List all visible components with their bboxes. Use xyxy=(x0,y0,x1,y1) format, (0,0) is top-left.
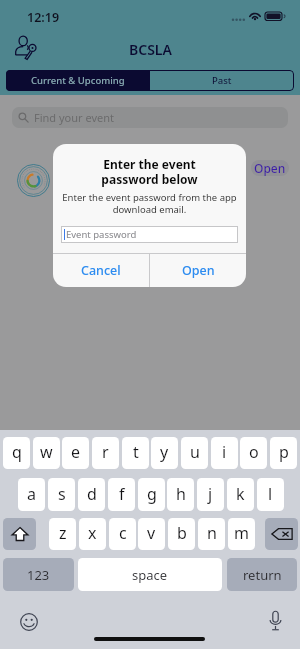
staticText: m xyxy=(234,522,249,544)
button[interactable]: w xyxy=(33,437,60,469)
staticText: u xyxy=(190,441,200,463)
button[interactable]: Open xyxy=(150,253,246,287)
button[interactable]: Account and password xyxy=(12,33,40,61)
staticText: 123 xyxy=(27,566,50,584)
staticText: v xyxy=(147,522,156,544)
staticText: n xyxy=(207,522,217,544)
button[interactable]: q xyxy=(3,437,30,469)
button[interactable]: c xyxy=(109,518,136,550)
button[interactable]: g xyxy=(138,478,165,511)
staticText: Enter the event password below xyxy=(53,156,246,187)
button[interactable]: v xyxy=(138,518,165,550)
staticText: t xyxy=(133,441,139,463)
button[interactable]: j xyxy=(197,478,224,511)
staticText: b xyxy=(177,522,187,544)
staticText: return xyxy=(243,566,282,584)
staticText: p xyxy=(279,441,289,463)
staticText: Event password xyxy=(66,228,137,241)
staticText: d xyxy=(87,483,97,505)
button[interactable]: a xyxy=(18,478,45,511)
button[interactable]: z xyxy=(49,518,76,550)
button[interactable]: t xyxy=(122,437,149,469)
button[interactable]: Shift xyxy=(3,518,36,550)
button[interactable]: return xyxy=(227,558,297,591)
staticText: Enter the event password from the app do… xyxy=(59,191,240,215)
button[interactable]: s xyxy=(48,478,75,511)
staticText: j xyxy=(208,483,213,505)
staticText: Open xyxy=(182,262,215,279)
button[interactable]: Dictation xyxy=(268,610,283,631)
staticText: y xyxy=(160,441,169,463)
button[interactable]: y xyxy=(151,437,178,469)
staticText: Cancel xyxy=(81,262,121,279)
staticText: i xyxy=(222,441,227,463)
staticText: f xyxy=(119,483,125,505)
staticText: c xyxy=(119,522,127,544)
staticText: Past xyxy=(212,74,232,87)
button[interactable]: i xyxy=(211,437,238,469)
button[interactable]: x xyxy=(79,518,106,550)
button[interactable]: r xyxy=(92,437,119,469)
staticText: z xyxy=(59,522,67,544)
staticText: space xyxy=(132,566,168,584)
staticText: k xyxy=(236,483,245,505)
button[interactable]: 123 xyxy=(3,558,74,591)
staticText: BCSLA xyxy=(129,40,172,59)
button[interactable]: d xyxy=(78,478,105,511)
button[interactable]: Past xyxy=(150,70,294,91)
staticText: q xyxy=(12,441,22,463)
button[interactable]: Cancel xyxy=(53,253,149,287)
button[interactable]: h xyxy=(167,478,194,511)
staticText: s xyxy=(58,483,66,505)
button[interactable]: Find your event xyxy=(12,107,288,128)
staticText: 12:19 xyxy=(27,9,60,26)
staticText: x xyxy=(88,522,97,544)
staticText: g xyxy=(147,483,157,505)
button[interactable]: f xyxy=(108,478,135,511)
button[interactable]: Open xyxy=(251,160,289,176)
button[interactable]: space xyxy=(78,558,222,591)
staticText: h xyxy=(176,483,186,505)
button[interactable]: e xyxy=(62,437,89,469)
staticText: Open xyxy=(254,160,286,176)
staticText: e xyxy=(71,441,81,463)
button[interactable]: u xyxy=(181,437,208,469)
staticText: w xyxy=(40,441,53,463)
button[interactable]: k xyxy=(227,478,254,511)
button[interactable]: m xyxy=(228,518,255,550)
staticText: l xyxy=(268,483,273,505)
staticText: o xyxy=(249,441,259,463)
button[interactable]: p xyxy=(270,437,297,469)
button[interactable]: o xyxy=(240,437,267,469)
button[interactable]: Current & Upcoming xyxy=(6,70,150,91)
button[interactable]: l xyxy=(257,478,284,511)
button[interactable]: Backspace xyxy=(265,518,298,550)
staticText: r xyxy=(102,441,109,463)
staticText: Find your event xyxy=(34,110,114,125)
button[interactable]: Event password xyxy=(61,226,238,243)
button[interactable]: n xyxy=(198,518,225,550)
staticText: a xyxy=(27,483,36,505)
button[interactable]: b xyxy=(168,518,195,550)
button[interactable]: Emoji keyboard xyxy=(20,613,38,631)
staticText: Current & Upcoming xyxy=(31,74,125,87)
